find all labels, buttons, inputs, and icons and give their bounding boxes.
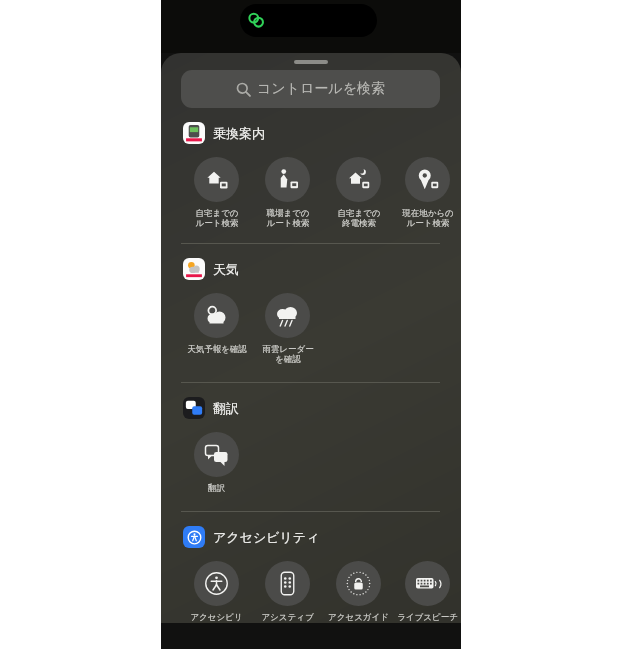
staticText: ライブスピーチ	[397, 612, 458, 623]
staticText: アクセシビリ	[190, 612, 243, 623]
button[interactable]: アクセシビリ	[181, 561, 252, 623]
staticText: アクセスガイド	[328, 612, 389, 623]
button[interactable]: アクセスガイド	[323, 561, 394, 623]
button[interactable]: 天気	[183, 258, 239, 280]
staticText: 乗換案内	[213, 125, 265, 141]
staticText: コントロールを検索	[257, 80, 385, 98]
staticText: 雨雲レーダー を確認	[262, 344, 314, 365]
staticText: 自宅までの 終電検索	[337, 208, 381, 229]
staticText: 翻訳	[208, 483, 225, 494]
button[interactable]: 自宅までの ルート検索	[181, 157, 252, 229]
staticText: 天気予報を確認	[187, 344, 247, 355]
staticText: アクセシビリティ	[213, 529, 320, 545]
button[interactable]: 現在地からの ルート検索	[394, 157, 461, 229]
button[interactable]: 職場までの ルート検索	[252, 157, 323, 229]
button[interactable]: 翻訳	[183, 397, 239, 419]
other: Live activity	[240, 4, 377, 37]
staticText: アシスティブ	[261, 612, 314, 623]
button[interactable]: アクセシビリティ	[183, 526, 320, 548]
button[interactable]: 雨雲レーダー を確認	[252, 293, 323, 365]
button[interactable]: 天気予報を確認	[181, 293, 252, 355]
staticText: 翻訳	[213, 400, 239, 416]
button[interactable]: 乗換案内	[183, 122, 265, 144]
button[interactable]: コントロールを検索	[181, 70, 440, 108]
button[interactable]: ライブスピーチ	[394, 561, 461, 623]
button[interactable]: アシスティブ	[252, 561, 323, 623]
button[interactable]: 自宅までの 終電検索	[323, 157, 394, 229]
staticText: 自宅までの ルート検索	[195, 208, 239, 229]
staticText: 天気	[213, 261, 239, 277]
staticText: 職場までの ルート検索	[266, 208, 310, 229]
staticText: 現在地からの ルート検索	[402, 208, 454, 229]
button[interactable]: 翻訳	[181, 432, 252, 494]
